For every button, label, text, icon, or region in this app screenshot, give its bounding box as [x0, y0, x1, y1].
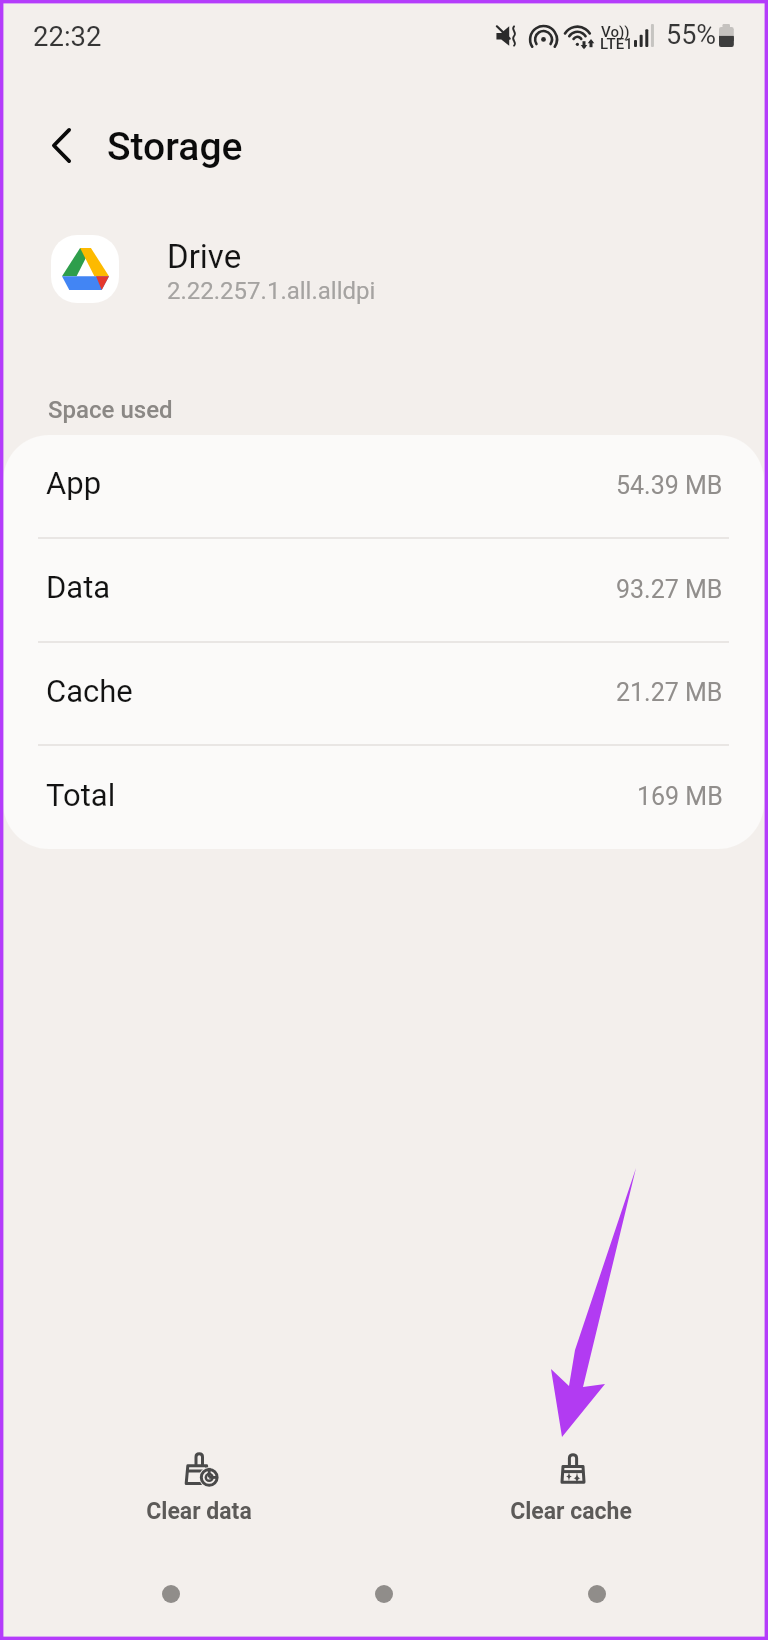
staticText: 21.27 MB: [616, 678, 723, 707]
staticText: Space used: [48, 396, 173, 424]
staticText: Storage: [107, 124, 243, 170]
staticText: Clear data: [146, 1498, 252, 1525]
button[interactable]: Back: [32, 116, 90, 174]
button[interactable]: Total: [3, 746, 764, 849]
button[interactable]: Clear cache: [475, 1430, 667, 1525]
staticText: Total: [46, 777, 116, 813]
button[interactable]: Clear data: [103, 1430, 295, 1525]
staticText: LTE1: [600, 35, 633, 53]
button[interactable]: Cache: [3, 643, 764, 744]
staticText: App: [46, 465, 102, 501]
staticText: Drive: [167, 237, 242, 276]
staticText: Clear cache: [510, 1498, 632, 1525]
staticText: 93.27 MB: [616, 575, 723, 604]
staticText: Data: [46, 569, 111, 605]
staticText: 2.22.257.1.all.alldpi: [167, 277, 376, 305]
button[interactable]: Data: [3, 539, 764, 641]
button[interactable]: Recents: [128, 1564, 214, 1624]
button[interactable]: App: [3, 435, 764, 537]
staticText: 55%: [666, 19, 717, 51]
staticText: 54.39 MB: [616, 471, 723, 500]
button[interactable]: Back: [554, 1564, 640, 1624]
staticText: 169 MB: [637, 782, 723, 811]
button[interactable]: Home: [341, 1564, 427, 1624]
staticText: Cache: [46, 673, 133, 709]
staticText: Vo)): [601, 23, 630, 41]
staticText: 22:32: [33, 20, 102, 52]
